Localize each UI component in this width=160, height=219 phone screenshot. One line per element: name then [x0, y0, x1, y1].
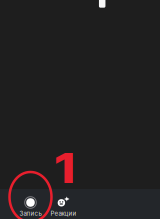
- button[interactable]: Запись: [7, 195, 53, 217]
- button[interactable]: Реакции: [40, 195, 86, 217]
- staticText: Реакции: [50, 210, 76, 217]
- staticText: Запись: [19, 210, 41, 217]
- staticText: 1: [57, 143, 74, 193]
